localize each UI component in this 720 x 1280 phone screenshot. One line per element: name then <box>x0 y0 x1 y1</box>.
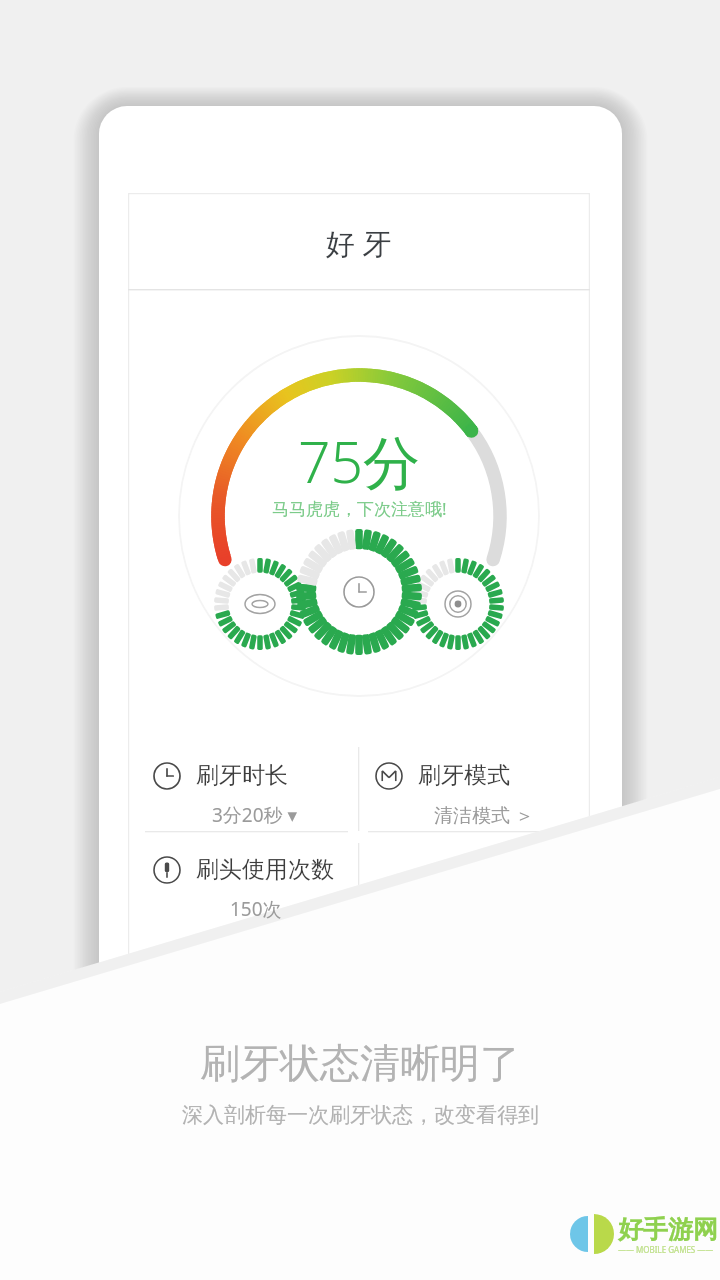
staticText: 刷牙时长 <box>196 761 288 790</box>
staticText: 75分 <box>298 422 421 494</box>
staticText: 刷牙状态清晰明了 <box>200 1038 520 1088</box>
staticText: 刷头使用次数 <box>196 855 334 884</box>
button[interactable]: 刷牙时长 <box>150 752 355 840</box>
button[interactable]: 刷牙模式 <box>372 752 577 840</box>
staticText: 150次 <box>230 896 282 922</box>
staticText: —— MOBILE GAMES —— <box>618 1244 714 1255</box>
staticText: 马马虎虎，下次注意哦! <box>272 497 447 520</box>
other: 好手游网 logo <box>566 1208 708 1264</box>
staticText: 好 牙 <box>326 223 392 263</box>
button[interactable]: 刷头使用次数 <box>150 846 355 934</box>
staticText: 清洁模式 ＞ <box>434 802 534 828</box>
staticText: 好手游网 <box>618 1214 718 1245</box>
staticText: 刷牙模式 <box>418 761 510 790</box>
staticText: 深入剖析每一次刷牙状态，改变看得到 <box>182 1102 539 1128</box>
staticText: 3分20秒 ▾ <box>212 802 298 828</box>
